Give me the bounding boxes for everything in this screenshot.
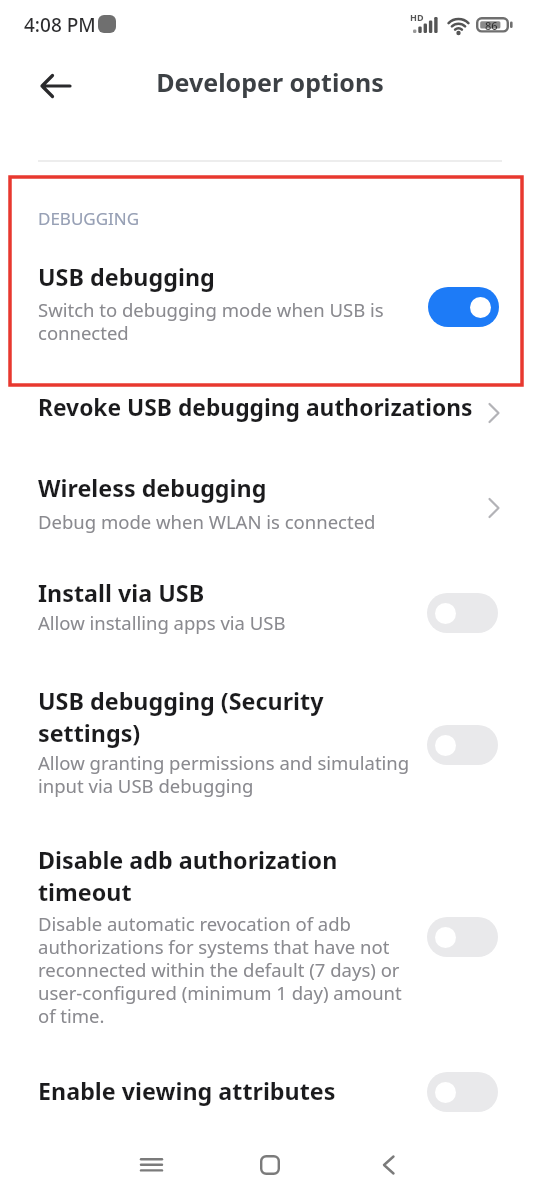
staticText: USB debugging (38, 261, 215, 293)
button[interactable]: Revoke USB debugging authorizations (0, 392, 540, 440)
staticText: Enable viewing attributes (38, 1075, 336, 1107)
button[interactable] (428, 287, 499, 327)
button[interactable] (230, 1130, 310, 1200)
staticText: Disable automatic revocation of adb auth… (38, 911, 402, 1028)
staticText: Disable adb authorization timeout (38, 844, 338, 908)
staticText: Switch to debugging mode when USB is con… (38, 297, 384, 345)
button[interactable] (427, 725, 498, 765)
button[interactable] (24, 58, 80, 114)
button[interactable] (112, 1130, 192, 1200)
button[interactable]: USB debugging (Security settings) (0, 678, 540, 806)
button[interactable]: USB debugging (10, 250, 522, 380)
staticText: DEBUGGING (38, 207, 140, 230)
button[interactable] (427, 917, 498, 957)
button[interactable]: Disable adb authorization timeout (0, 836, 540, 1036)
button[interactable]: Install via USB (0, 570, 540, 648)
staticText: HD (410, 11, 424, 23)
staticText: 86 (485, 18, 498, 33)
staticText: 4:08 PM (24, 12, 96, 38)
staticText: Developer options (0, 65, 540, 99)
staticText: Debug mode when WLAN is connected (38, 509, 376, 534)
staticText: Revoke USB debugging authorizations (38, 392, 473, 423)
button[interactable]: Enable viewing attributes (0, 1062, 540, 1122)
button[interactable] (348, 1130, 428, 1200)
staticText: Wireless debugging (38, 472, 267, 504)
button[interactable] (427, 593, 498, 633)
staticText: Allow granting permissions and simulatin… (38, 750, 410, 798)
button[interactable]: Wireless debugging (0, 464, 540, 544)
staticText: Install via USB (38, 577, 205, 609)
staticText: USB debugging (Security settings) (38, 685, 324, 749)
button[interactable] (427, 1072, 498, 1112)
staticText: Allow installing apps via USB (38, 610, 286, 635)
